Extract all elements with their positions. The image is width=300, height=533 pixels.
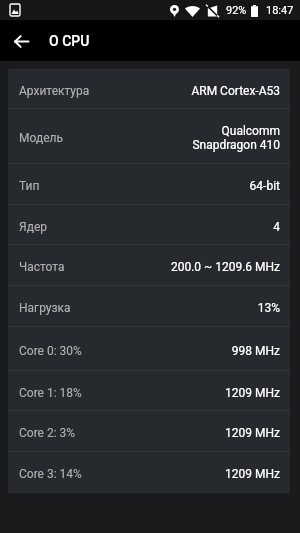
staticText: Snapdragon 410 — [192, 138, 280, 152]
staticText: 64-bit — [249, 179, 280, 193]
staticText: 92% — [226, 4, 247, 17]
staticText: Core 2: 3% — [19, 426, 76, 440]
staticText: Core 1: 18% — [19, 386, 82, 400]
staticText: 4 — [273, 220, 280, 234]
staticText: Частота — [19, 260, 65, 274]
staticText: Qualcomm — [221, 124, 280, 138]
staticText: 1209 MHz — [225, 426, 280, 440]
staticText: Тип — [19, 179, 40, 193]
staticText: 200.0 ~ 1209.6 MHz — [170, 260, 280, 274]
staticText: 1209 MHz — [225, 467, 280, 481]
button[interactable]: Архитектура — [8, 70, 290, 108]
staticText: Core 0: 30% — [19, 344, 82, 358]
button[interactable]: Тип — [8, 164, 290, 204]
staticText: Архитектура — [19, 84, 90, 98]
staticText: Ядер — [19, 220, 47, 234]
button[interactable]: Модель — [8, 109, 290, 163]
staticText: 13% — [257, 301, 280, 315]
button[interactable]: Ядер — [8, 205, 290, 244]
button[interactable]: Нагрузка — [8, 286, 290, 326]
staticText: Модель — [19, 131, 63, 145]
staticText: Core 3: 14% — [19, 467, 82, 481]
staticText: 998 MHz — [231, 344, 280, 358]
staticText: О CPU — [49, 33, 90, 49]
button[interactable]: Частота — [8, 245, 290, 285]
staticText: ARM Cortex-A53 — [191, 84, 280, 98]
button[interactable]: Core 2: 3% — [8, 411, 290, 451]
staticText: Нагрузка — [19, 301, 71, 315]
button[interactable]: Core 0: 30% — [8, 327, 290, 370]
button[interactable]: Core 3: 14% — [8, 452, 290, 492]
staticText: 18:47 — [266, 4, 294, 17]
button[interactable]: Back — [3, 23, 39, 59]
button[interactable]: Core 1: 18% — [8, 371, 290, 410]
staticText: 1209 MHz — [225, 386, 280, 400]
